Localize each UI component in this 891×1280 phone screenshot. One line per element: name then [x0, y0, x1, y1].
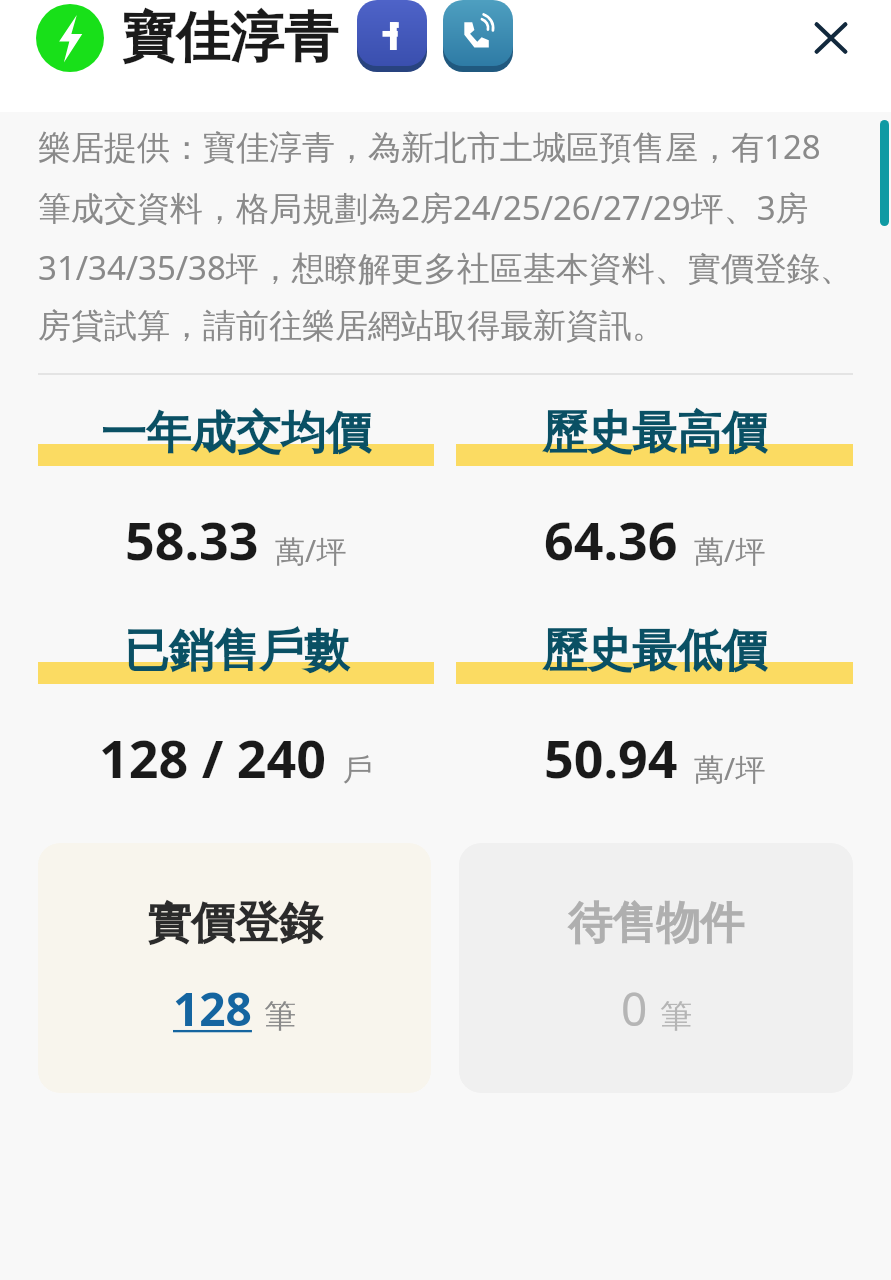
staticText: 0	[621, 977, 648, 1040]
staticText: 萬/坪	[694, 530, 766, 571]
staticText: 萬/坪	[694, 748, 766, 789]
other: Lightning	[36, 4, 104, 72]
staticText: 歷史最低價	[542, 623, 767, 680]
staticText: 樂居提供：寶佳淳青，為新北市土城區預售屋，有128筆成交資料，格局規劃為2房24…	[38, 124, 853, 347]
staticText: 128	[173, 977, 252, 1040]
button[interactable]: 待售物件	[459, 843, 853, 1093]
staticText: 戶	[343, 751, 373, 789]
staticText: 實價登錄	[147, 896, 323, 951]
staticText: 128 / 240	[99, 722, 327, 793]
staticText: 64.36	[544, 504, 678, 575]
staticText: 已銷售戶數	[124, 623, 349, 680]
button[interactable]: 實價登錄	[38, 843, 431, 1093]
staticText: 一年成交均價	[101, 405, 371, 462]
staticText: 待售物件	[568, 896, 744, 951]
button[interactable]: Call	[442, 0, 514, 76]
button[interactable]: 歷史最高價	[456, 409, 853, 575]
staticText: 筆	[660, 996, 692, 1036]
staticText: 筆	[264, 996, 296, 1036]
staticText: 50.94	[544, 722, 678, 793]
button[interactable]: 一年成交均價	[38, 409, 434, 575]
button[interactable]: Close	[795, 2, 867, 74]
staticText: 萬/坪	[275, 530, 347, 571]
staticText: 寶佳淳青	[122, 4, 338, 72]
staticText: 58.33	[125, 504, 259, 575]
button[interactable]: Facebook	[356, 0, 428, 76]
button[interactable]: 已銷售戶數	[38, 627, 434, 793]
button[interactable]: 歷史最低價	[456, 627, 853, 793]
staticText: 歷史最高價	[542, 405, 767, 462]
